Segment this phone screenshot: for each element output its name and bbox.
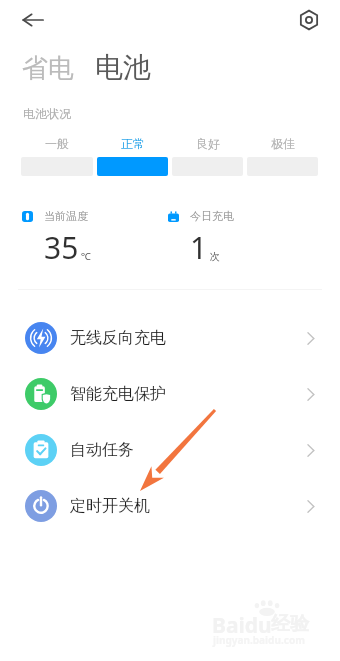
staticText: 省电 xyxy=(22,52,74,85)
staticText: ℃ xyxy=(81,249,91,263)
staticText: 自动任务 xyxy=(70,440,134,460)
staticText: 经验 xyxy=(271,612,309,636)
staticText: 定时开关机 xyxy=(70,496,150,516)
staticText: 电池状况 xyxy=(23,106,71,121)
staticText: Baidu xyxy=(212,611,272,640)
button[interactable]: 无线反向充电 xyxy=(0,310,340,366)
staticText: 无线反向充电 xyxy=(70,328,166,348)
button[interactable]: Settings xyxy=(295,6,323,34)
button[interactable]: 自动任务 xyxy=(0,422,340,478)
staticText: 一般 xyxy=(45,136,69,151)
button[interactable]: Back xyxy=(18,5,48,35)
staticText: jingyan.baidu.com xyxy=(213,633,305,647)
button[interactable]: 定时开关机 xyxy=(0,478,340,534)
staticText: 当前温度 xyxy=(44,209,88,223)
staticText: 35 xyxy=(44,227,79,268)
button[interactable]: 电池 xyxy=(95,50,151,85)
button[interactable]: 省电 xyxy=(22,52,74,85)
staticText: 良好 xyxy=(196,136,220,151)
staticText: 电池 xyxy=(95,50,151,85)
staticText: 次 xyxy=(210,250,220,263)
staticText: 极佳 xyxy=(271,136,295,151)
button[interactable]: 智能充电保护 xyxy=(0,366,340,422)
staticText: 今日充电 xyxy=(190,209,234,223)
staticText: 智能充电保护 xyxy=(70,384,166,404)
staticText: 正常 xyxy=(121,136,145,151)
staticText: 1 xyxy=(190,227,208,268)
